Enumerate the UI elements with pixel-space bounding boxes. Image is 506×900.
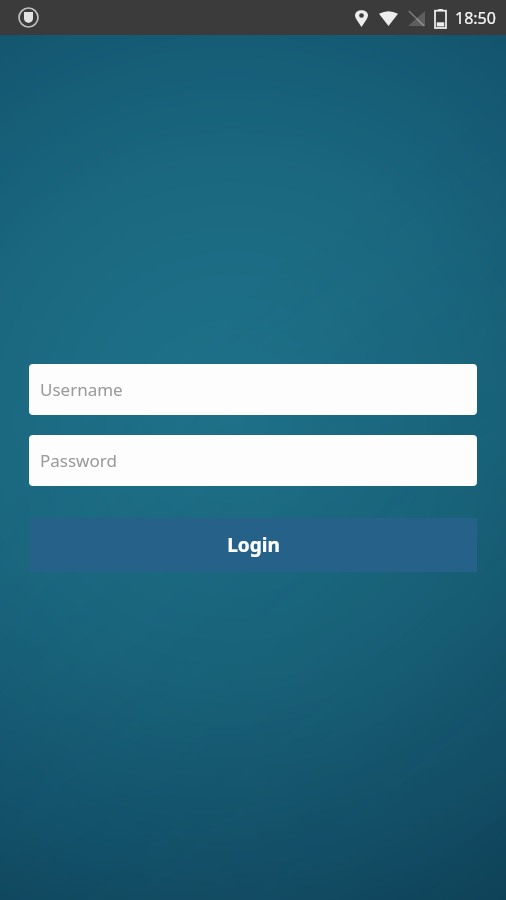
staticText: Password [40,449,117,472]
staticText: 18:50 [455,7,496,29]
staticText: Login [227,532,280,558]
button[interactable]: Login [29,518,477,572]
staticText: Username [40,378,123,401]
button[interactable]: Password [29,435,477,486]
button[interactable]: Username [29,364,477,415]
other: Security [19,8,38,27]
